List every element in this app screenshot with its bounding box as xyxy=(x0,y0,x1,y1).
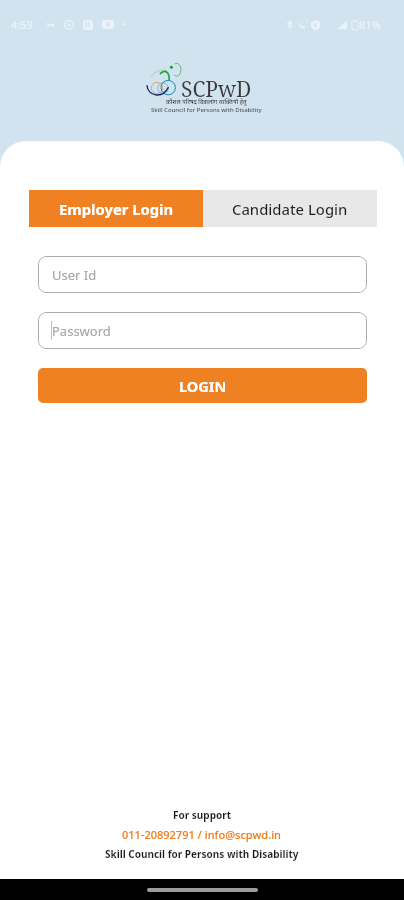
staticText: Skill Council for Persons with Disabilit… xyxy=(151,106,262,114)
staticText: Employer Login xyxy=(59,199,174,219)
button[interactable]: User Id xyxy=(38,256,367,293)
staticText: U xyxy=(85,20,91,30)
button[interactable]: Password xyxy=(38,312,367,349)
staticText: 81% xyxy=(359,17,381,32)
staticText: Password xyxy=(52,322,111,340)
button[interactable]: Employer Login xyxy=(29,190,203,227)
staticText: 011-20892791 / info@scpwd.in xyxy=(122,827,282,842)
button[interactable]: Candidate Login xyxy=(203,190,377,227)
staticText: LOGIN xyxy=(179,376,227,396)
staticText: For support xyxy=(173,808,232,822)
staticText: User Id xyxy=(52,266,97,284)
button[interactable]: 011-20892791 / info@scpwd.in xyxy=(116,826,288,843)
staticText: 4:59 xyxy=(11,17,33,32)
staticText: Candidate Login xyxy=(232,199,348,219)
staticText: SCPwD xyxy=(181,75,252,104)
button[interactable]: LOGIN xyxy=(38,368,367,403)
staticText: कौशल परिषद विकलांग व्यक्तियों हेतु xyxy=(166,98,247,106)
staticText: Skill Council for Persons with Disabilit… xyxy=(105,847,299,861)
other: Home xyxy=(147,888,258,892)
